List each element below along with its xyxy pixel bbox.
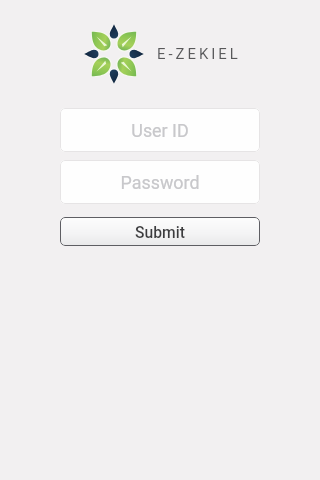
- button[interactable]: Submit: [60, 217, 260, 246]
- staticText: E-ZEKIEL: [157, 45, 241, 62]
- button[interactable]: User ID: [60, 108, 260, 152]
- staticText: User ID: [131, 120, 189, 141]
- staticText: Submit: [135, 223, 185, 241]
- staticText: Password: [120, 172, 200, 193]
- button[interactable]: Password: [60, 160, 260, 204]
